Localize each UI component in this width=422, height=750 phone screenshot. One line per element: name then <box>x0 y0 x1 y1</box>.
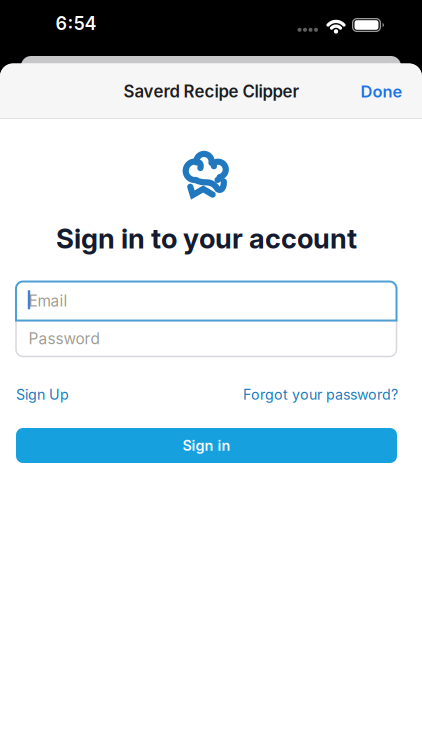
staticText: Done <box>360 82 402 101</box>
staticText: Email <box>28 292 67 310</box>
staticText: Sign Up <box>16 386 69 403</box>
secureTextField[interactable]: Password <box>28 329 380 348</box>
staticText: Saverd Recipe Clipper <box>123 81 299 102</box>
button[interactable]: Forgot your password? <box>178 386 398 403</box>
staticText: Password <box>28 329 99 348</box>
staticText: Sign in to your account <box>56 222 357 255</box>
staticText: Sign in <box>182 437 230 454</box>
staticText: Forgot your password? <box>243 386 398 403</box>
button[interactable]: Done <box>350 70 412 112</box>
button[interactable]: Sign Up <box>16 386 136 403</box>
staticText: 6:54 <box>55 13 96 34</box>
button[interactable]: Sign in <box>16 428 397 463</box>
textField[interactable]: Email <box>28 292 380 310</box>
